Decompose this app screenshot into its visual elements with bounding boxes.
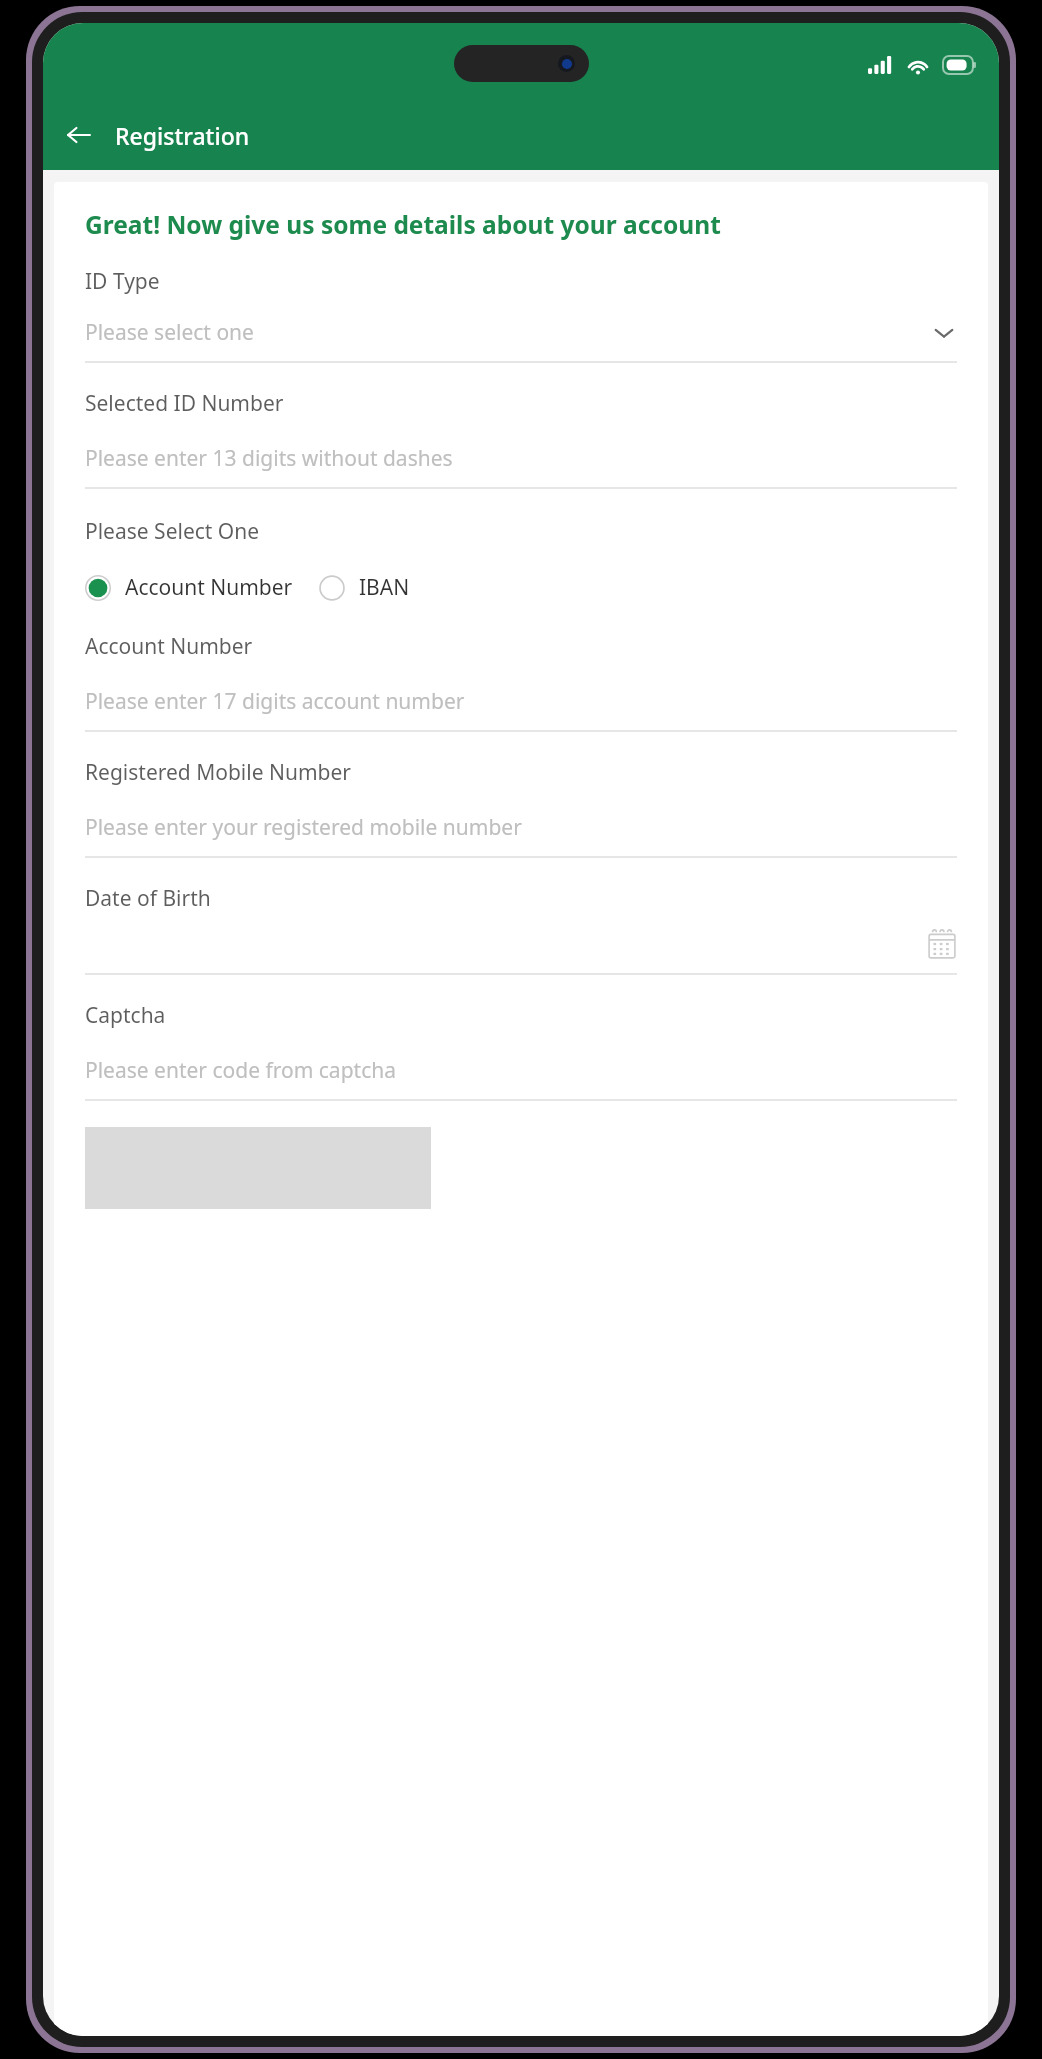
staticText: IBAN [359, 573, 410, 602]
staticText: Registered Mobile Number [85, 758, 352, 787]
staticText: Selected ID Number [85, 389, 284, 418]
staticText: Please enter code from captcha [85, 1056, 396, 1085]
button[interactable]: Account Number [85, 573, 293, 602]
other: Pick date [927, 929, 957, 959]
staticText: Registration [115, 120, 250, 151]
button[interactable]: Back [55, 111, 103, 159]
staticText: Please enter your registered mobile numb… [85, 813, 522, 842]
button[interactable]: Please enter code from captcha [85, 1056, 957, 1085]
button[interactable]: Please enter 13 digits without dashes [85, 444, 957, 473]
staticText: Date of Birth [85, 884, 211, 913]
staticText: Please select one [85, 318, 931, 347]
staticText: ID Type [85, 267, 160, 296]
staticText: Please enter 17 digits account number [85, 687, 465, 716]
staticText: Great! Now give us some details about yo… [85, 208, 721, 241]
staticText: Account Number [125, 573, 293, 602]
button[interactable]: Please select one [85, 318, 957, 347]
staticText: Captcha [85, 1001, 166, 1030]
button[interactable]: Please enter 17 digits account number [85, 687, 957, 716]
staticText: Account Number [85, 632, 253, 661]
staticText: Please Select One [85, 517, 260, 546]
button[interactable]: Please enter your registered mobile numb… [85, 813, 957, 842]
staticText: Please enter 13 digits without dashes [85, 444, 453, 473]
button[interactable]: IBAN [319, 573, 410, 602]
button[interactable]: Pick date [85, 929, 957, 959]
